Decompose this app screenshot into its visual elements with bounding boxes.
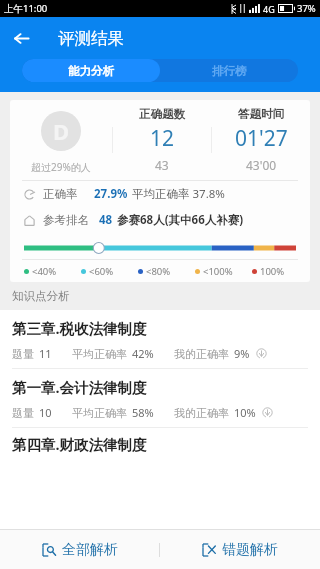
staticText: <40% <box>32 265 57 278</box>
staticText: 参赛68人(其中66人补赛) <box>117 212 244 228</box>
staticText: 100% <box>260 265 285 278</box>
staticText: 第一章.会计法律制度 <box>12 377 147 397</box>
staticText: 题量 <box>12 406 34 420</box>
staticText: 上午11:00 <box>4 2 48 15</box>
staticText: 我的正确率 <box>174 347 229 361</box>
staticText: 答题时间 <box>238 107 284 121</box>
staticText: 27.9% <box>94 186 128 202</box>
button[interactable]: 排行榜 <box>160 59 298 82</box>
staticText: 正确率 <box>43 187 78 201</box>
staticText: 第四章.财政法律制度 <box>12 434 147 454</box>
staticText: 参考排名 <box>43 213 89 227</box>
staticText: <100% <box>203 265 233 278</box>
staticText: 10% <box>234 405 256 420</box>
staticText: 48 <box>99 212 113 228</box>
button[interactable]: 第三章.税收法律制度 <box>0 310 320 368</box>
staticText: <60% <box>89 265 114 278</box>
staticText: 平均正确率 <box>72 347 127 361</box>
button[interactable]: 全部解析 <box>0 530 159 569</box>
staticText: 平均正确率 37.8% <box>132 186 225 202</box>
staticText: 全部解析 <box>62 541 118 559</box>
button[interactable]: 返回 <box>0 17 42 59</box>
staticText: 知识点分析 <box>12 289 70 303</box>
staticText: 9% <box>234 346 250 361</box>
staticText: 题量 <box>12 347 34 361</box>
staticText: 评测结果 <box>58 28 124 49</box>
staticText: 58% <box>132 405 154 420</box>
staticText: 43'00 <box>246 157 277 173</box>
staticText: 错题解析 <box>222 541 278 559</box>
staticText: 正确题数 <box>139 107 185 121</box>
staticText: 01'27 <box>235 124 288 153</box>
staticText: 能力分析 <box>68 64 114 78</box>
staticText: 12 <box>150 124 175 153</box>
button[interactable]: 第一章.会计法律制度 <box>0 369 320 427</box>
button[interactable]: 错题解析 <box>160 530 320 569</box>
staticText: 10 <box>39 405 52 420</box>
staticText: 43 <box>155 157 169 173</box>
staticText: 排行榜 <box>212 64 247 78</box>
staticText: <80% <box>146 265 171 278</box>
staticText: 平均正确率 <box>72 406 127 420</box>
staticText: 第三章.税收法律制度 <box>12 318 147 338</box>
staticText: 4G <box>263 3 275 15</box>
staticText: 超过29%的人 <box>31 160 91 174</box>
staticText: 11 <box>39 346 52 361</box>
staticText: 37% <box>297 2 316 15</box>
button[interactable]: 能力分析 <box>22 59 160 82</box>
staticText: D <box>53 116 70 146</box>
staticText: 我的正确率 <box>174 406 229 420</box>
staticText: 42% <box>132 346 154 361</box>
